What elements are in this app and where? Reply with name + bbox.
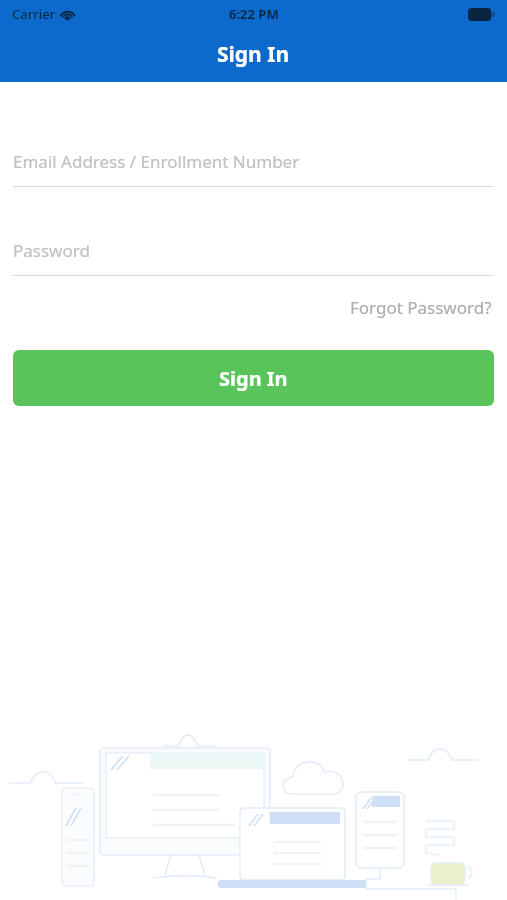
- staticText: Email Address / Enrollment Number: [13, 150, 300, 173]
- staticText: 6:22 PM: [229, 5, 279, 23]
- button[interactable]: Email Address / Enrollment Number: [13, 144, 494, 187]
- staticText: Sign In: [219, 365, 288, 392]
- staticText: Sign In: [217, 40, 290, 69]
- button[interactable]: Forgot Password?: [348, 292, 494, 323]
- button[interactable]: Sign In: [13, 350, 494, 406]
- staticText: Password: [13, 239, 90, 262]
- button[interactable]: Password: [13, 233, 494, 276]
- staticText: Forgot Password?: [350, 296, 492, 319]
- other: Battery full: [468, 8, 495, 21]
- other: Wi-Fi: [61, 8, 74, 21]
- staticText: Carrier: [12, 5, 56, 23]
